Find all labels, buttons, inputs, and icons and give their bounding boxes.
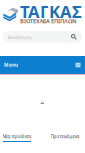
staticText: Προτεινόμενα — [50, 133, 79, 139]
staticText: ΒΙΟΤΕΧΝΙΑ ΕΠΙΠΛΩΝ — [20, 17, 76, 25]
button[interactable]: Search — [71, 34, 77, 40]
staticText: Αναζήτηση — [8, 34, 32, 40]
staticText: Menu — [4, 62, 18, 68]
staticText: ΤΑΓΚΑΣ — [20, 0, 82, 23]
staticText: Νέα προϊόντα — [2, 133, 31, 139]
button[interactable]: Νέα προϊόντα — [2, 133, 32, 142]
button[interactable]: Προτεινόμενα — [48, 133, 82, 142]
button[interactable]: Open menu — [75, 62, 81, 67]
